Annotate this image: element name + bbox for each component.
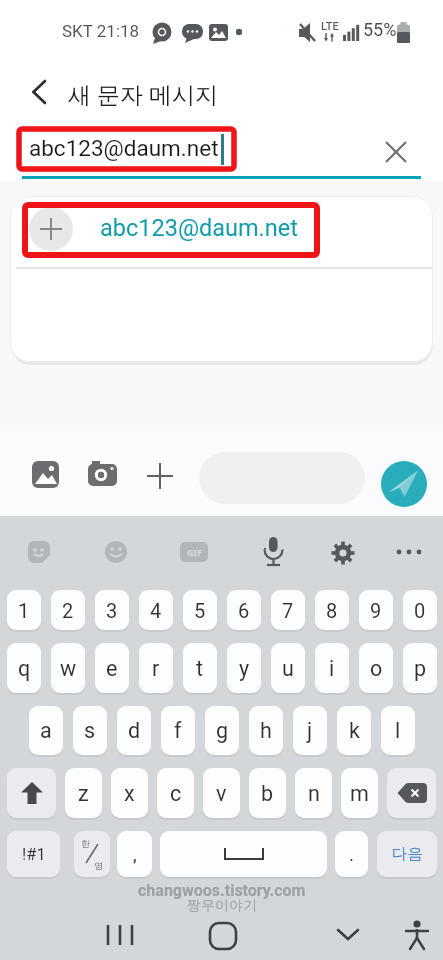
button[interactable]: 8 [315,590,349,630]
button[interactable] [402,919,432,951]
button[interactable] [381,461,427,507]
button[interactable]: abc123@daum.net [100,214,298,242]
staticText: GIF [187,546,202,558]
button[interactable]: 4 [139,590,173,630]
staticText: , [133,843,137,865]
staticText: e [106,656,118,681]
button[interactable] [29,207,73,251]
button[interactable]: p [403,643,437,693]
button[interactable]: 7 [271,590,305,630]
staticText: c [170,781,182,806]
button[interactable]: 2 [51,590,85,630]
button[interactable]: r [139,643,173,693]
staticText: 다음 [392,844,423,864]
staticText: 8 [326,599,338,622]
button[interactable]: g [205,706,239,755]
staticText: 새 문자 메시지 [68,78,218,109]
button[interactable]: f [161,706,195,755]
button[interactable]: 한 [74,831,110,877]
button[interactable]: l [381,706,415,755]
staticText: y [239,656,250,681]
button[interactable]: . [335,831,368,877]
button[interactable] [25,454,67,496]
staticText: o [370,656,383,681]
button[interactable] [160,831,327,877]
button[interactable] [333,922,363,946]
button[interactable] [387,768,436,818]
staticText: k [349,718,360,743]
button[interactable]: 0 [403,590,437,630]
button[interactable]: GIF [180,542,208,562]
staticText: . [349,843,355,865]
button[interactable]: e [95,643,129,693]
staticText: 6 [238,599,250,622]
staticText: 5 [194,599,206,622]
button[interactable]: 다음 [377,831,437,877]
button[interactable]: 6 [227,590,261,630]
button[interactable] [331,541,355,565]
button[interactable]: z [65,768,102,818]
button[interactable] [103,539,129,565]
staticText: g [216,718,229,743]
staticText: SKT 21:18 [62,21,140,41]
staticText: n [308,781,320,806]
button[interactable]: y [227,643,261,693]
button[interactable] [258,535,288,569]
button[interactable]: , [117,831,152,877]
staticText: 55% [363,19,397,40]
button[interactable]: o [359,643,393,693]
button[interactable]: t [183,643,217,693]
button[interactable] [207,921,239,951]
staticText: t [196,656,204,681]
button[interactable]: n [295,768,332,818]
button[interactable]: b [249,768,286,818]
button[interactable]: h [249,706,283,755]
button[interactable]: s [73,706,107,755]
staticText: i [329,656,335,681]
button[interactable]: d [117,706,151,755]
button[interactable]: v [203,768,240,818]
button[interactable]: !#1 [7,831,60,877]
staticText: 1 [18,599,30,622]
staticText: 9 [370,599,382,622]
staticText: 한 [81,838,90,849]
button[interactable]: w [51,643,85,693]
button[interactable]: 9 [359,590,393,630]
button[interactable] [145,461,175,491]
button[interactable] [7,768,56,818]
button[interactable]: c [157,768,194,818]
button[interactable]: m [341,768,378,818]
button[interactable]: 1 [7,590,41,630]
staticText: w [60,656,77,681]
button[interactable] [100,922,140,948]
staticText: j [307,718,313,743]
button[interactable]: u [271,643,305,693]
staticText: 4 [150,599,162,622]
button[interactable]: 5 [183,590,217,630]
staticText: q [18,656,31,681]
button[interactable] [394,546,424,558]
staticText: v [216,781,227,806]
button[interactable]: x [111,768,148,818]
button[interactable] [382,138,410,166]
button[interactable]: j [293,706,327,755]
button[interactable]: 3 [95,590,129,630]
staticText: l [395,718,401,743]
staticText: changwoos.tistory.com [138,881,306,900]
staticText: 3 [106,599,118,622]
staticText: f [174,718,182,743]
button[interactable] [24,78,54,108]
staticText: 2 [62,599,74,622]
button[interactable]: a [29,706,63,755]
staticText: p [414,656,427,681]
button[interactable] [26,539,52,565]
button[interactable]: k [337,706,371,755]
staticText: u [282,656,294,681]
staticText: r [152,656,160,681]
button[interactable]: i [315,643,349,693]
button[interactable] [82,454,124,496]
button[interactable]: q [7,643,41,693]
staticText: 7 [282,599,294,622]
staticText: s [84,718,96,743]
